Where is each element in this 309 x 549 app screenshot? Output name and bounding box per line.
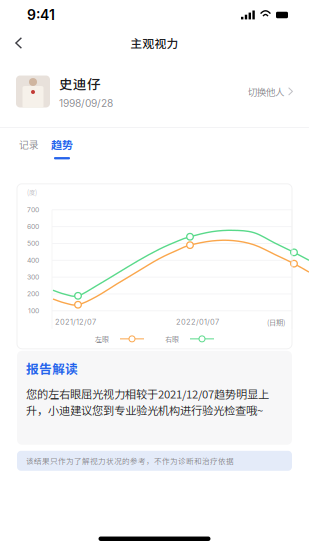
staticText: 记录 [19,137,39,151]
staticText: 700 [27,206,39,214]
staticText: 史迪仔 [59,73,101,93]
staticText: 右眼 [165,334,179,344]
staticText: 9:41 [27,6,55,23]
button[interactable]: 切换他人 [248,76,293,107]
staticText: 该结果只作为了解视力状况的参考，不作为诊断和治疗依据 [26,455,234,466]
staticText: (日期) [267,317,285,327]
staticText: 趋势 [51,136,73,152]
staticText: 600 [27,222,39,231]
staticText: 1998/09/28 [59,97,113,109]
button[interactable]: Back [0,29,38,57]
staticText: 您的左右眼屈光视力相较于2021/12/07趋势明显上升，小迪建议您到专业验光机… [26,385,269,418]
staticText: 切换他人 [248,85,284,98]
staticText: 左眼 [95,334,109,344]
staticText: 500 [27,239,39,247]
staticText: 主观视力 [130,34,178,51]
staticText: 2022/01/07 [176,317,219,326]
staticText: (度) [27,188,37,197]
button[interactable]: 记录 [13,127,45,168]
staticText: 300 [27,273,39,281]
staticText: 400 [27,256,39,264]
staticText: 100 [28,307,39,315]
staticText: 2021/12/07 [55,317,96,326]
staticText: 200 [27,290,39,298]
staticText: 报告解读 [26,359,78,377]
button[interactable]: 趋势 [45,126,79,169]
